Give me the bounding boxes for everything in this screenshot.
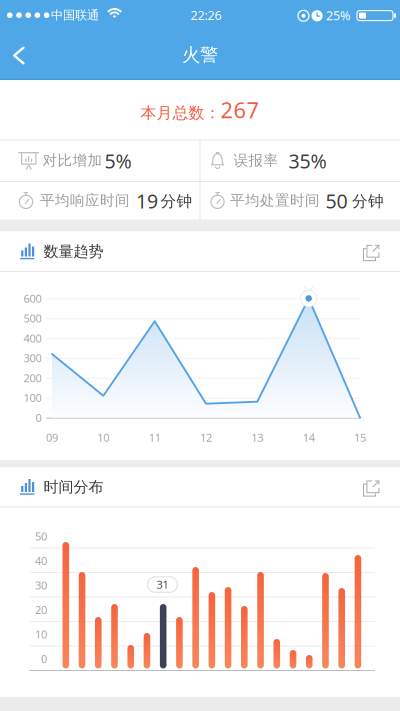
staticText: 时间分布 <box>43 478 103 496</box>
staticText: 40 <box>35 553 47 568</box>
staticText: 35% <box>288 148 326 174</box>
staticText: 20 <box>35 602 47 617</box>
staticText: 19 <box>136 188 158 214</box>
staticText: 267 <box>220 95 259 125</box>
staticText: 09 <box>46 430 58 445</box>
staticText: 误报率 <box>233 151 278 170</box>
staticText: 400 <box>23 331 41 346</box>
staticText: 50 <box>35 529 47 544</box>
staticText: 12 <box>200 430 212 445</box>
staticText: 300 <box>23 350 41 365</box>
staticText: 13 <box>251 430 263 445</box>
staticText: 600 <box>23 291 41 306</box>
staticText: 本月总数： <box>140 103 220 123</box>
staticText: 10 <box>35 627 47 642</box>
staticText: 11 <box>149 430 161 445</box>
staticText: 0 <box>41 651 47 666</box>
staticText: 10 <box>97 430 109 445</box>
staticText: 火警 <box>182 43 218 67</box>
staticText: 31 <box>156 577 168 592</box>
staticText: 25% <box>326 7 350 24</box>
staticText: 中国联通 <box>51 7 99 23</box>
staticText: 平均处置时间 <box>230 191 320 210</box>
staticText: 15 <box>354 430 366 445</box>
staticText: 分钟 <box>352 191 384 211</box>
staticText: 数量趋势 <box>43 242 103 261</box>
staticText: 22:26 <box>190 7 221 24</box>
button[interactable]: Export <box>351 468 391 508</box>
staticText: 0 <box>35 410 41 425</box>
staticText: 100 <box>23 390 41 405</box>
staticText: 平均响应时间 <box>40 191 130 210</box>
staticText: 14 <box>303 430 315 445</box>
staticText: 5% <box>104 148 131 174</box>
staticText: 对比增加 <box>42 151 102 170</box>
staticText: 500 <box>23 311 41 326</box>
button[interactable]: Export <box>351 233 391 272</box>
button[interactable]: Back <box>0 36 41 75</box>
staticText: 30 <box>35 578 47 593</box>
staticText: 分钟 <box>160 191 192 211</box>
staticText: 50 <box>325 188 347 214</box>
staticText: 200 <box>23 370 41 385</box>
